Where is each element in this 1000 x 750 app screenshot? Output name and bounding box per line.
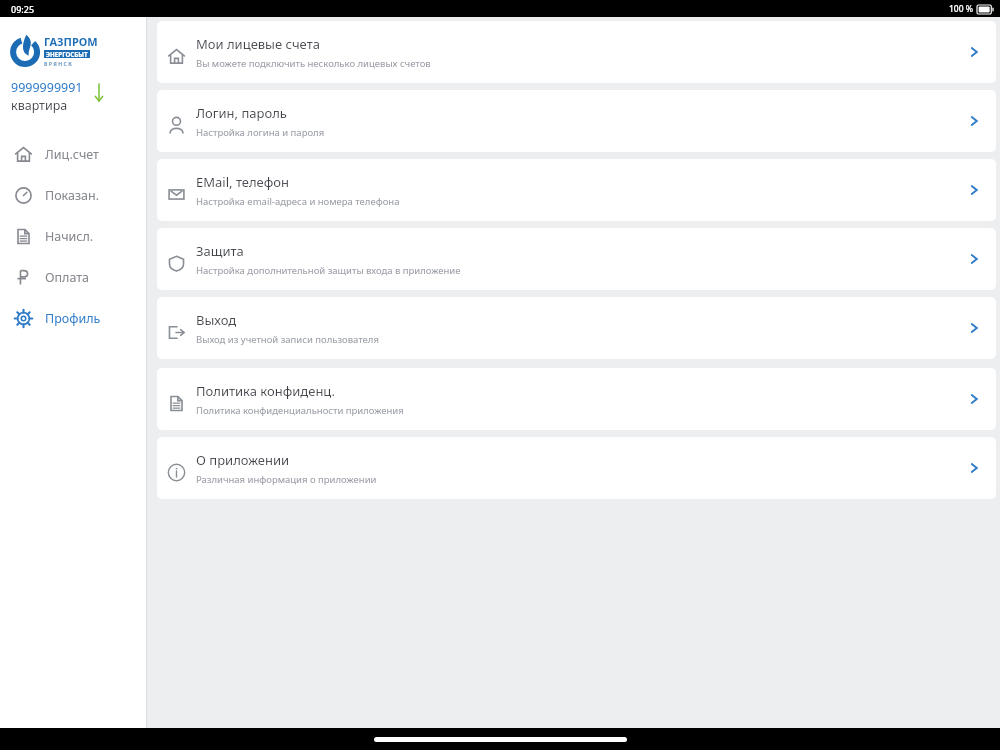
- other: Open Логин, пароль: [952, 90, 996, 152]
- staticText: Выход из учетной записи пользователя: [196, 333, 379, 346]
- button[interactable]: Мои лицевые счета: [157, 21, 996, 83]
- staticText: ГАЗПРОМ: [44, 34, 98, 49]
- staticText: Настройка email-адреса и номера телефона: [196, 195, 400, 208]
- staticText: 9999999991: [11, 79, 83, 96]
- staticText: Начисл.: [45, 228, 94, 245]
- button[interactable]: Оплата: [0, 257, 147, 298]
- other: Open Выход: [952, 297, 996, 359]
- staticText: Мои лицевые счета: [196, 35, 320, 53]
- button[interactable]: О приложении: [157, 437, 996, 499]
- staticText: Б Р Я Н С К: [44, 60, 72, 67]
- button[interactable]: EMail, телефон: [157, 159, 996, 221]
- button[interactable]: Профиль: [0, 298, 147, 339]
- other: Open Политика конфиденц.: [952, 368, 996, 430]
- staticText: Различная информация о приложении: [196, 473, 377, 486]
- button[interactable]: Показан.: [0, 175, 147, 216]
- other: Open О приложении: [952, 437, 996, 499]
- other: Open EMail, телефон: [952, 159, 996, 221]
- staticText: Лиц.счет: [45, 146, 99, 163]
- staticText: Настройка логина и пароля: [196, 126, 325, 139]
- staticText: 100 %: [949, 3, 974, 15]
- staticText: Логин, пароль: [196, 104, 287, 122]
- other: Open Защита: [952, 228, 996, 290]
- staticText: Вы можете подключить несколько лицевых с…: [196, 57, 431, 70]
- staticText: О приложении: [196, 451, 290, 469]
- staticText: Политика конфиденц.: [196, 382, 336, 400]
- button[interactable]: Лиц.счет: [0, 134, 147, 175]
- button[interactable]: Защита: [157, 228, 996, 290]
- button[interactable]: Логин, пароль: [157, 90, 996, 152]
- button[interactable]: Выход: [157, 297, 996, 359]
- staticText: Защита: [196, 242, 244, 260]
- staticText: ЭНЕРГОСБЫТ: [46, 50, 88, 58]
- staticText: Политика конфиденциальности приложения: [196, 404, 404, 417]
- staticText: Выход: [196, 311, 237, 329]
- staticText: Показан.: [45, 187, 100, 204]
- staticText: Настройка дополнительной защиты входа в …: [196, 264, 461, 277]
- staticText: квартира: [11, 97, 68, 114]
- staticText: Оплата: [45, 269, 90, 286]
- button[interactable]: Начисл.: [0, 216, 147, 257]
- staticText: EMail, телефон: [196, 173, 290, 191]
- staticText: Профиль: [45, 310, 101, 327]
- other: Open Мои лицевые счета: [952, 21, 996, 83]
- button[interactable]: Политика конфиденц.: [157, 368, 996, 430]
- staticText: 09:25: [11, 3, 35, 15]
